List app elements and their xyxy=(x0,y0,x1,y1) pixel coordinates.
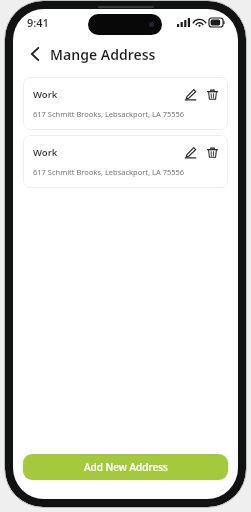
staticText: 617 Schmitt Brooks, Lebsackport, LA 7555… xyxy=(33,167,185,177)
staticText: 617 Schmitt Brooks, Lebsackport, LA 7555… xyxy=(33,109,185,119)
button[interactable]: Delete address xyxy=(204,86,220,102)
button[interactable]: Work xyxy=(23,77,228,130)
button[interactable]: Work xyxy=(23,135,228,188)
button[interactable]: Delete address xyxy=(204,144,220,160)
staticText: Work xyxy=(33,146,58,159)
button[interactable]: Add New Address xyxy=(23,454,228,480)
button[interactable]: Edit address xyxy=(182,86,198,102)
staticText: Mange Address xyxy=(50,45,156,64)
staticText: Work xyxy=(33,88,58,101)
staticText: 9:41 xyxy=(27,15,49,30)
staticText: Add New Address xyxy=(84,460,168,474)
button[interactable]: Back xyxy=(24,43,46,65)
button[interactable]: Edit address xyxy=(182,144,198,160)
